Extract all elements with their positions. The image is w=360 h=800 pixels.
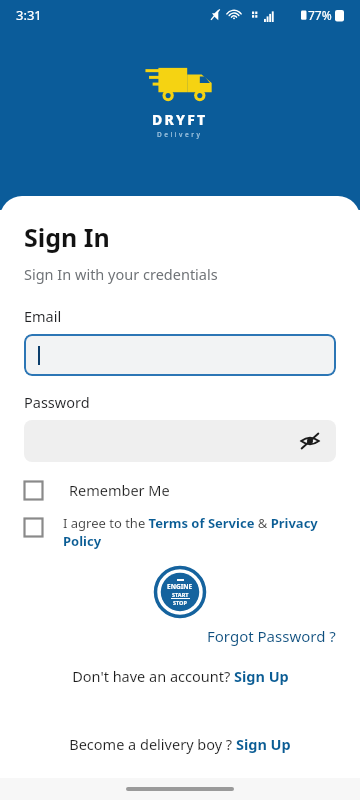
staticText: Sign In with your credentials [24, 264, 218, 284]
staticText: Sign In [24, 220, 110, 254]
staticText: STOP [173, 599, 187, 606]
button[interactable]: Show password [24, 420, 336, 462]
button[interactable] [24, 334, 336, 376]
button[interactable]: I agree to the Terms of Service & Privac… [24, 514, 336, 550]
staticText: I agree to the Terms of Service & Privac… [63, 514, 336, 550]
button[interactable]: Become a delivery boy ? Sign Up [69, 734, 291, 754]
button[interactable]: Forgot Password ? [207, 626, 336, 646]
staticText: DRYFT [152, 110, 208, 129]
button[interactable]: Remember Me [24, 480, 336, 500]
staticText: START [172, 591, 189, 598]
staticText: Email [24, 306, 62, 326]
staticText: Password [24, 392, 90, 412]
staticText: Remember Me [69, 480, 170, 500]
staticText: ENGINE [167, 582, 193, 591]
button[interactable]: Don't have an account? Sign Up [72, 666, 289, 686]
staticText: 3:31 [16, 6, 42, 24]
staticText: 77% [308, 7, 332, 23]
staticText: Delivery [157, 130, 203, 139]
button[interactable]: Engine start stop sign in [154, 566, 206, 618]
button[interactable]: Show password [294, 425, 326, 457]
